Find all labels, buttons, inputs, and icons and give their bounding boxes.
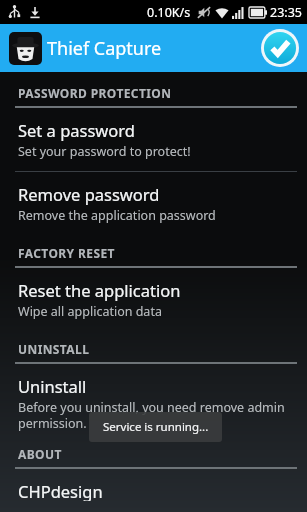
- button[interactable]: Set a password: [0, 108, 307, 171]
- staticText: Remove password: [18, 183, 160, 205]
- staticText: 0.10K/s: [147, 4, 191, 21]
- staticText: Service is running...: [103, 419, 209, 435]
- staticText: Uninstall: [18, 375, 87, 397]
- staticText: Set your password to protect!: [18, 143, 191, 160]
- button[interactable]: App icon: [9, 32, 42, 65]
- staticText: PASSWORD PROTECTION: [18, 85, 172, 101]
- staticText: Remove the application password: [18, 207, 216, 224]
- staticText: Before you uninstall, you need remove ad…: [18, 399, 293, 431]
- button[interactable]: CHPdesign: [0, 469, 307, 512]
- staticText: Wipe all application data: [18, 303, 162, 320]
- staticText: UNINSTALL: [18, 341, 90, 357]
- button[interactable]: Service running toggle: [261, 29, 299, 67]
- button[interactable]: Reset the application: [0, 268, 307, 331]
- button[interactable]: Uninstall: [0, 364, 307, 442]
- button[interactable]: Remove password: [0, 172, 307, 235]
- staticText: FACTORY RESET: [18, 245, 115, 261]
- staticText: Reset the application: [18, 279, 181, 301]
- staticText: Set a password: [18, 119, 135, 141]
- staticText: ABOUT: [18, 446, 62, 462]
- staticText: Thief Capture: [47, 36, 162, 61]
- staticText: 23:35: [270, 4, 302, 21]
- staticText: CHPdesign: [18, 480, 103, 501]
